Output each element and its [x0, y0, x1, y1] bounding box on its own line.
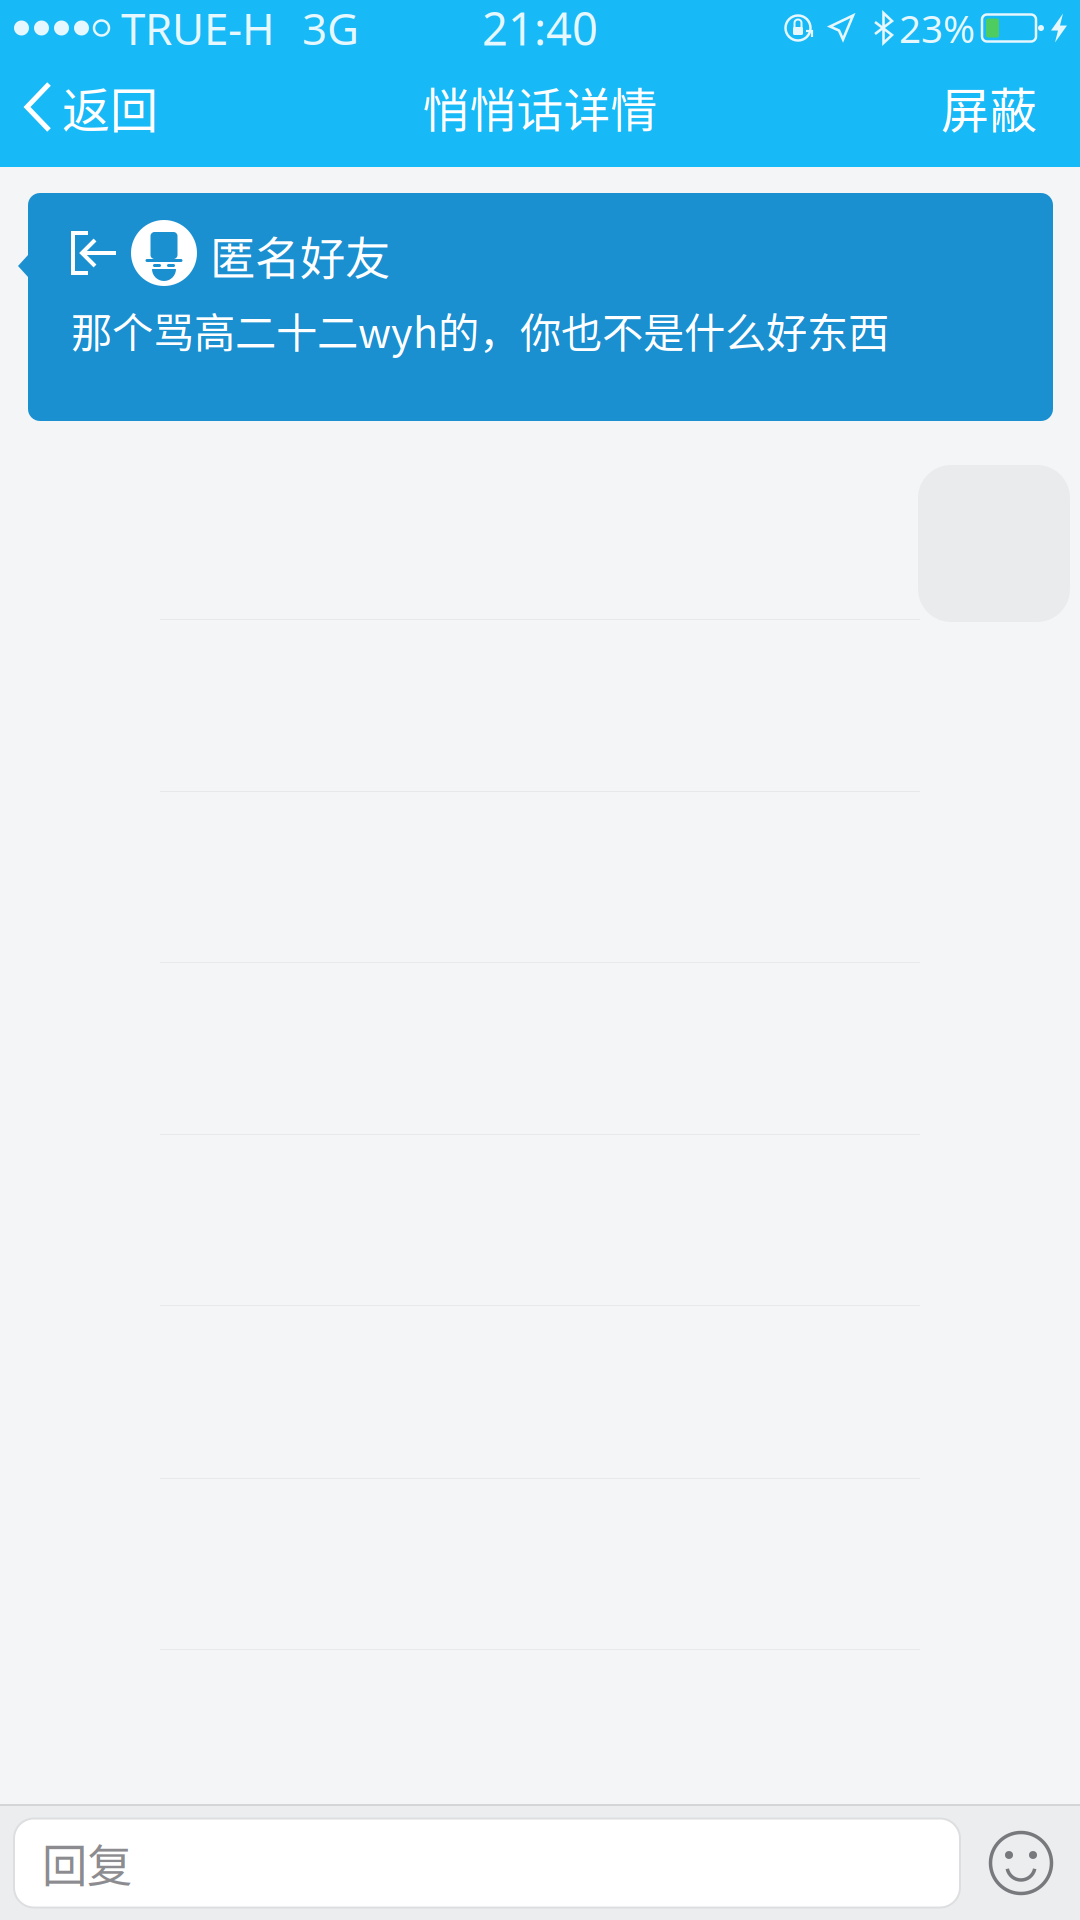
staticText: 悄悄话详情	[422, 73, 657, 141]
staticText: 回复	[42, 1830, 132, 1896]
staticText: 那个骂高二十二wyh的，你也不是什么好东西	[71, 300, 889, 360]
staticText: 匿名好友	[210, 223, 390, 288]
button[interactable]: 返回	[0, 56, 176, 158]
button[interactable]: Emoji keyboard	[989, 1831, 1053, 1895]
staticText: TRUE-H	[121, 0, 275, 57]
button[interactable]: 屏蔽	[917, 56, 1080, 158]
button[interactable]: 回复	[14, 1818, 960, 1907]
staticText: 屏蔽	[941, 72, 1037, 142]
staticText: 21:40	[482, 0, 598, 58]
staticText: 返回	[62, 72, 158, 142]
staticText: 23%	[899, 2, 975, 54]
staticText: 3G	[302, 0, 359, 57]
